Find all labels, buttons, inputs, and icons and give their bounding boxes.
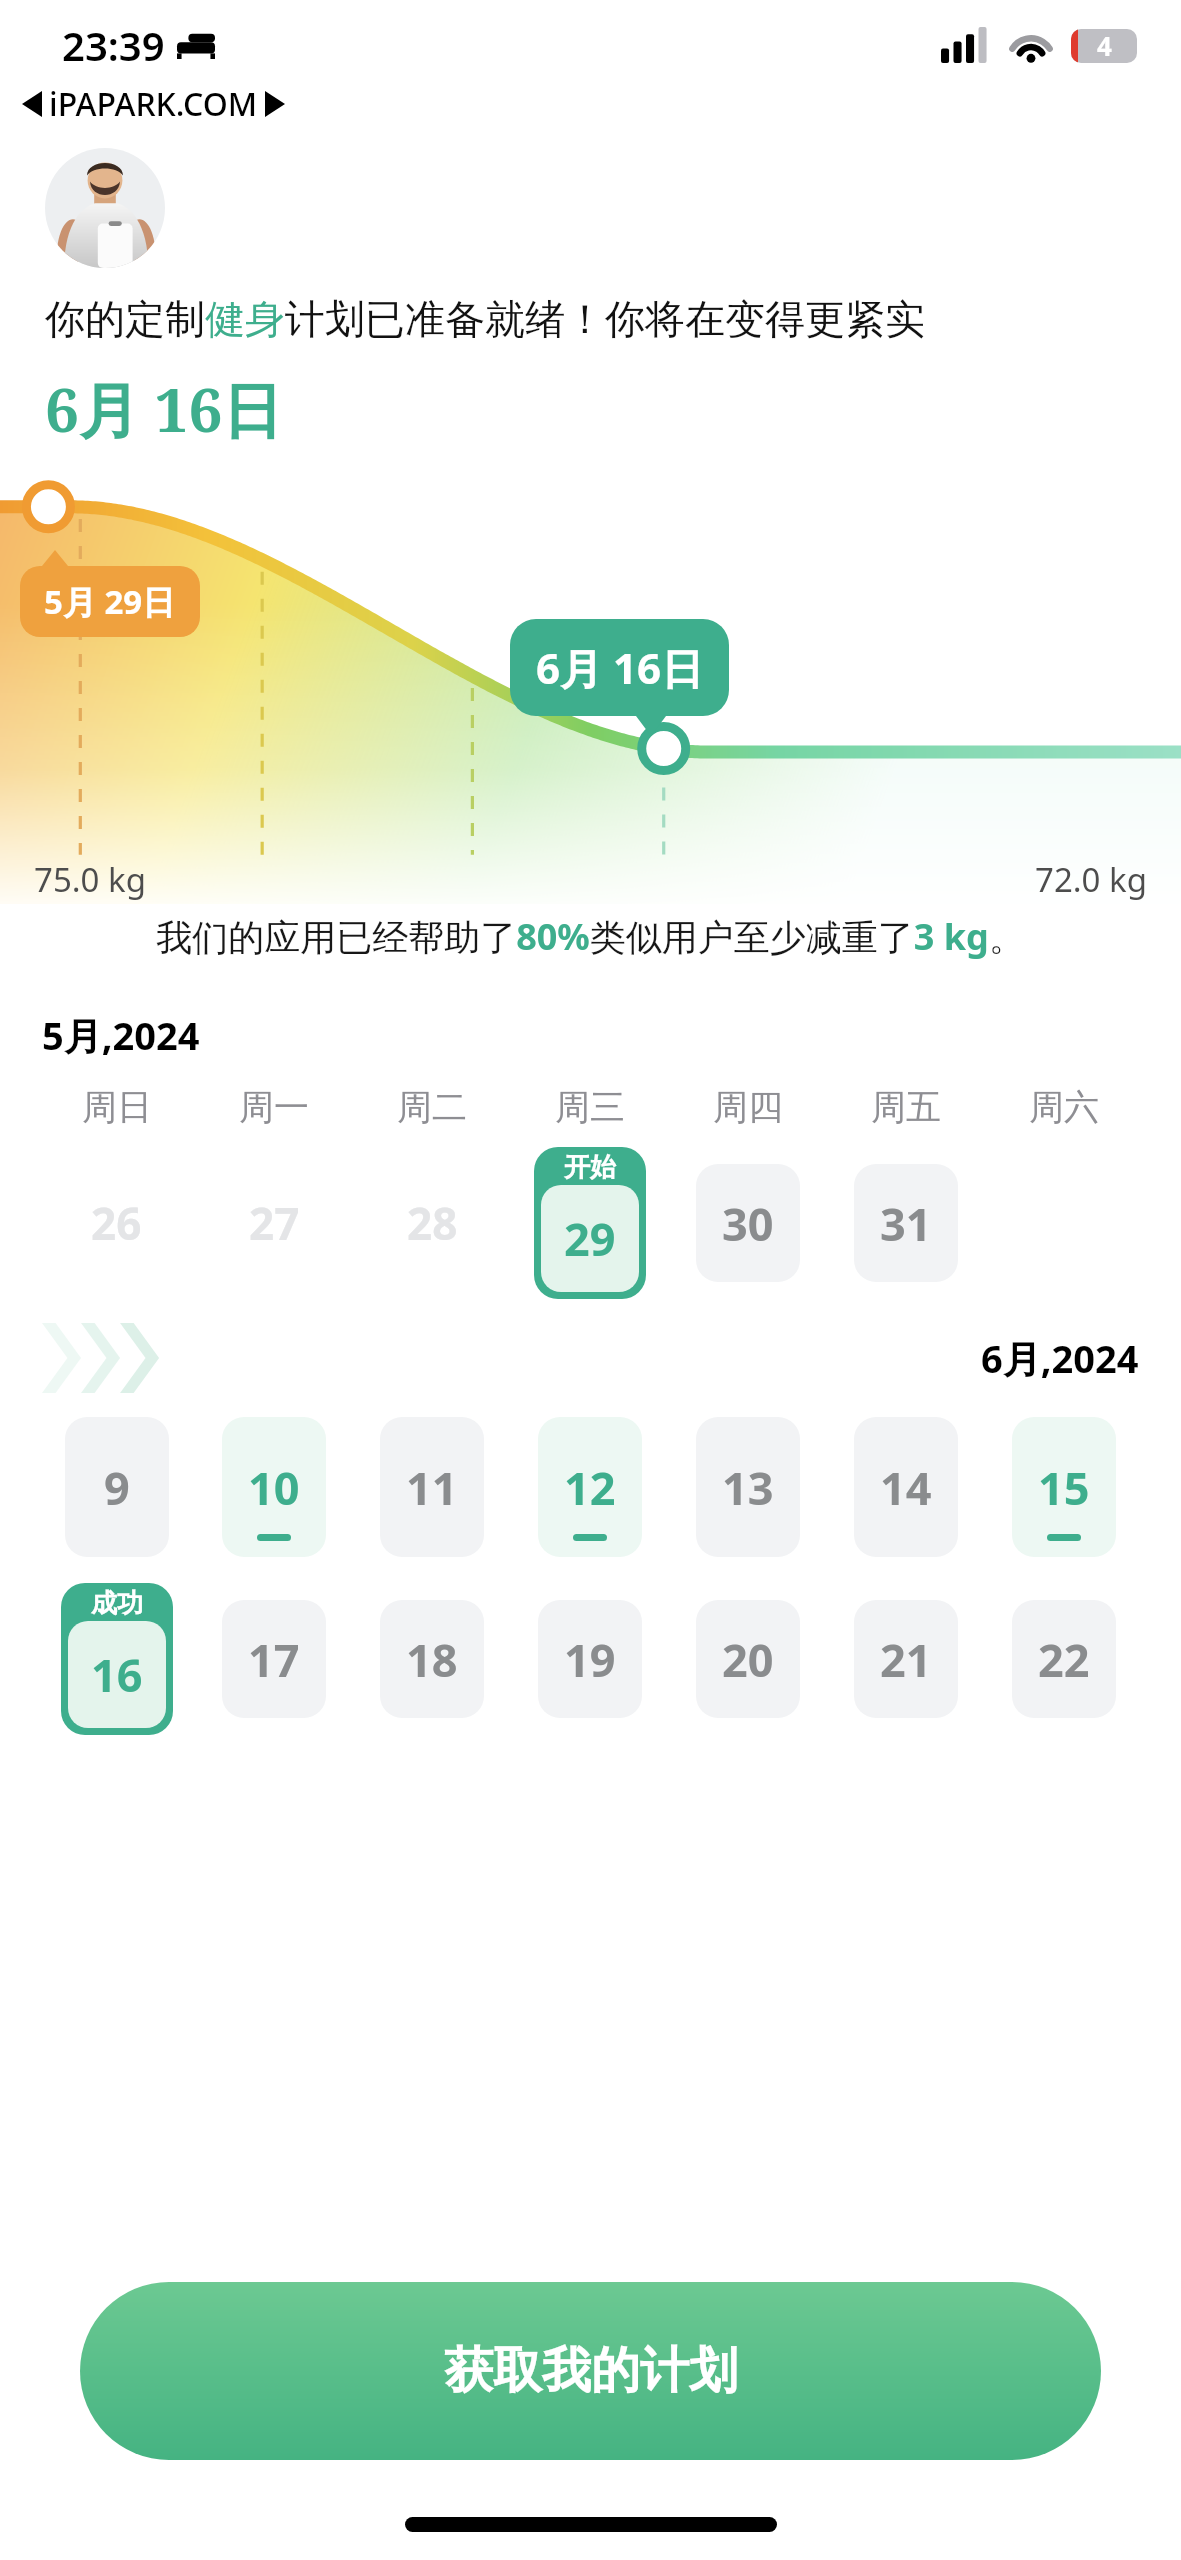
button[interactable]: 成功: [61, 1583, 173, 1735]
button[interactable]: 12: [538, 1417, 642, 1557]
staticText: 17: [248, 1629, 300, 1690]
staticText: 13: [722, 1457, 774, 1518]
staticText: 9: [104, 1457, 130, 1518]
staticText: 18: [406, 1629, 458, 1690]
staticText: 5月,2024: [42, 1009, 200, 1061]
button[interactable]: 19: [538, 1600, 642, 1718]
staticText: 31: [880, 1193, 932, 1254]
staticText: 75.0 kg: [34, 857, 146, 902]
staticText: 6月 16日: [45, 368, 283, 450]
staticText: 6月,2024: [981, 1332, 1139, 1384]
button[interactable]: 13: [696, 1417, 800, 1557]
staticText: 5月 29日: [44, 579, 176, 624]
button[interactable]: 14: [854, 1417, 958, 1557]
staticText: 19: [564, 1629, 616, 1690]
button[interactable]: 20: [696, 1600, 800, 1718]
staticText: 23:39: [62, 18, 165, 72]
staticText: 20: [722, 1629, 774, 1690]
staticText: 开始: [564, 1151, 616, 1184]
other: Profile photo: [45, 148, 165, 268]
staticText: 周一: [239, 1085, 309, 1129]
button[interactable]: 17: [222, 1600, 326, 1718]
staticText: 我们的应用已经帮助了80%类似用户至少减重了3 kg。: [56, 912, 1125, 961]
button[interactable]: 21: [854, 1600, 958, 1718]
staticText: 22: [1038, 1629, 1090, 1690]
staticText: 成功: [91, 1587, 143, 1620]
staticText: 14: [880, 1457, 932, 1518]
staticText: 4: [1097, 28, 1112, 63]
button[interactable]: 22: [1012, 1600, 1116, 1718]
staticText: 72.0 kg: [1035, 857, 1147, 902]
button[interactable]: 18: [380, 1600, 484, 1718]
button[interactable]: 11: [380, 1417, 484, 1557]
staticText: 12: [564, 1457, 616, 1518]
staticText: 21: [880, 1629, 932, 1690]
staticText: 周六: [1029, 1085, 1099, 1129]
button[interactable]: 9: [65, 1417, 169, 1557]
staticText: 28: [407, 1193, 458, 1253]
button[interactable]: 开始: [534, 1147, 646, 1299]
staticText: 周五: [871, 1085, 941, 1129]
staticText: 11: [406, 1457, 458, 1518]
staticText: 27: [249, 1193, 300, 1253]
staticText: 30: [722, 1193, 774, 1254]
staticText: 周日: [82, 1085, 152, 1129]
button[interactable]: 10: [222, 1417, 326, 1557]
staticText: 15: [1038, 1457, 1090, 1518]
staticText: 10: [248, 1457, 300, 1518]
staticText: 周三: [555, 1085, 625, 1129]
staticText: 获取我的计划: [444, 2340, 738, 2402]
staticText: 周四: [713, 1085, 783, 1129]
staticText: 16: [91, 1644, 143, 1705]
staticText: iPAPARK.COM: [49, 82, 258, 126]
staticText: 29: [564, 1208, 616, 1269]
button[interactable]: 15: [1012, 1417, 1116, 1557]
staticText: 6月 16日: [536, 639, 703, 696]
staticText: 你的定制健身计划已准备就绪！你将在变得更紧实: [45, 294, 925, 344]
staticText: 周二: [397, 1085, 467, 1129]
button[interactable]: 获取我的计划: [80, 2282, 1101, 2460]
button[interactable]: 31: [854, 1164, 958, 1282]
staticText: 26: [91, 1193, 142, 1253]
button[interactable]: 30: [696, 1164, 800, 1282]
